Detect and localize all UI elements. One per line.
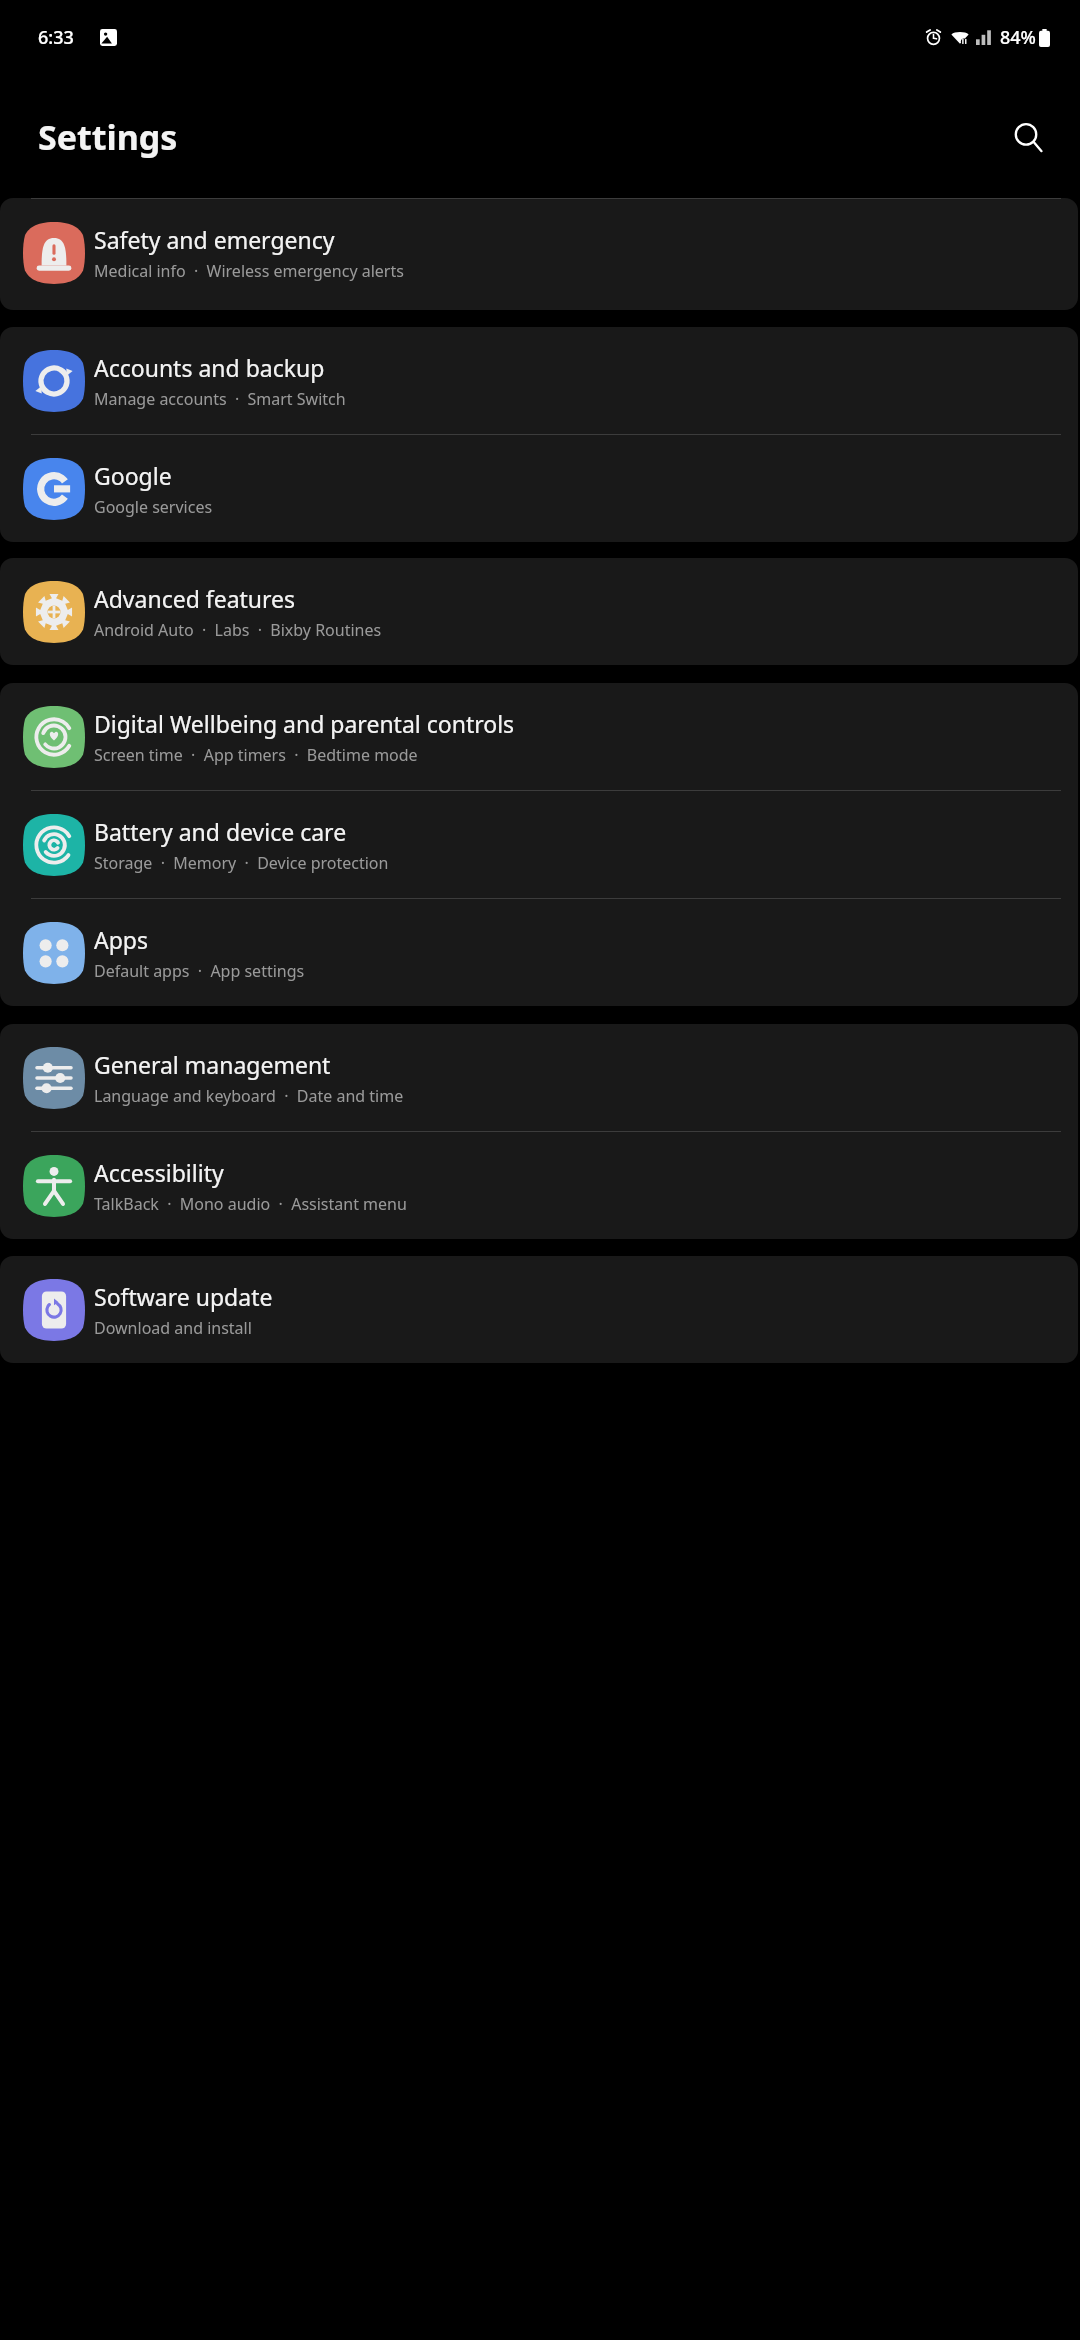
- staticText: Screen time · App timers · Bedtime mode: [94, 744, 418, 766]
- staticText: Digital Wellbeing and parental controls: [94, 708, 515, 739]
- staticText: Software update: [94, 1281, 273, 1312]
- staticText: 6:33: [38, 25, 74, 50]
- button[interactable]: Battery and device care: [0, 790, 1078, 898]
- staticText: Safety and emergency: [94, 224, 335, 255]
- button[interactable]: Accounts and backup: [0, 327, 1078, 434]
- button[interactable]: Accessibility: [0, 1131, 1078, 1239]
- staticText: Google services: [94, 496, 213, 518]
- button[interactable]: Google: [0, 434, 1078, 542]
- staticText: Settings: [38, 114, 178, 160]
- staticText: TalkBack · Mono audio · Assistant menu: [94, 1193, 407, 1215]
- staticText: 84%: [1000, 25, 1036, 50]
- staticText: Google: [94, 460, 172, 491]
- button[interactable]: Advanced features: [0, 558, 1078, 665]
- button[interactable]: Digital Wellbeing and parental controls: [0, 683, 1078, 790]
- staticText: Storage · Memory · Device protection: [94, 852, 389, 874]
- staticText: Accounts and backup: [94, 352, 325, 383]
- staticText: Language and keyboard · Date and time: [94, 1085, 404, 1107]
- staticText: Advanced features: [94, 583, 296, 614]
- button[interactable]: Apps: [0, 898, 1078, 1006]
- staticText: Download and install: [94, 1317, 252, 1339]
- staticText: General management: [94, 1049, 331, 1080]
- button[interactable]: Software update: [0, 1256, 1078, 1363]
- staticText: Android Auto · Labs · Bixby Routines: [94, 619, 382, 641]
- staticText: Battery and device care: [94, 816, 347, 847]
- staticText: Manage accounts · Smart Switch: [94, 388, 346, 410]
- button[interactable]: General management: [0, 1024, 1078, 1131]
- staticText: Default apps · App settings: [94, 960, 305, 982]
- staticText: Medical info · Wireless emergency alerts: [94, 260, 404, 282]
- staticText: Apps: [94, 924, 149, 955]
- button[interactable]: Search: [1002, 111, 1054, 163]
- staticText: Accessibility: [94, 1157, 224, 1188]
- button[interactable]: Safety and emergency: [0, 198, 1078, 306]
